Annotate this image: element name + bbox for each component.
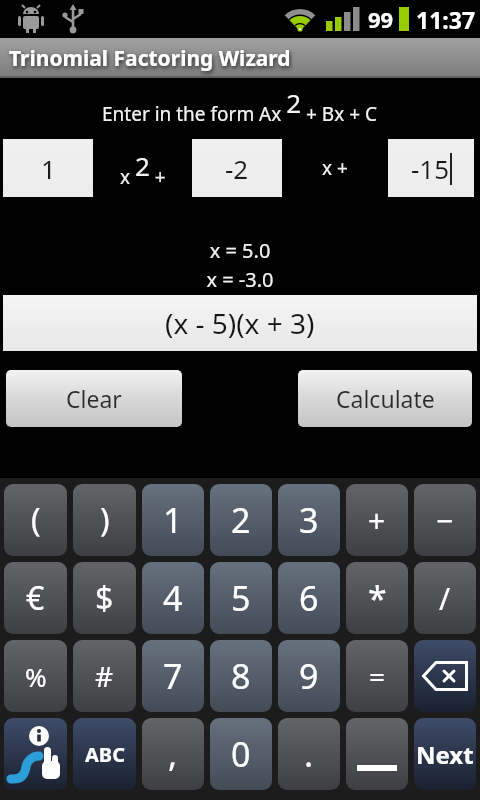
staticText: ABC (85, 741, 125, 768)
button[interactable]: -15 (388, 139, 474, 197)
button[interactable]: * (346, 562, 408, 634)
staticText: (x - 5)(x + 3) (165, 304, 315, 342)
staticText: x = -3.0 (0, 266, 480, 293)
button[interactable]: 8 (210, 640, 272, 712)
button[interactable] (414, 640, 476, 712)
button[interactable]: . (278, 718, 340, 790)
button[interactable]: Clear (6, 370, 182, 427)
button[interactable]: 4 (142, 562, 204, 634)
button[interactable]: ABC (73, 718, 136, 790)
button[interactable] (4, 718, 67, 790)
staticText: + (368, 500, 386, 541)
staticText: ) (100, 498, 110, 542)
button[interactable]: = (346, 640, 408, 712)
staticText: 5 (231, 575, 251, 621)
button[interactable]: + (346, 484, 408, 556)
staticText: 4 (163, 575, 183, 621)
button[interactable]: 0 (210, 718, 272, 790)
staticText: 2 (231, 497, 251, 543)
button[interactable]: Calculate (298, 370, 472, 427)
button[interactable]: 1 (3, 139, 93, 197)
button[interactable]: / (414, 562, 476, 634)
staticText: = (369, 657, 386, 695)
staticText: 1 (163, 497, 183, 543)
staticText: 0 (231, 731, 251, 777)
button[interactable]: € (4, 562, 67, 634)
staticText: -15 (411, 151, 450, 186)
button[interactable]: $ (73, 562, 136, 634)
button[interactable] (346, 718, 408, 790)
button[interactable]: 1 (142, 484, 204, 556)
button[interactable]: Next (414, 718, 476, 790)
button[interactable]: # (73, 640, 136, 712)
button[interactable]: (x - 5)(x + 3) (3, 295, 477, 351)
staticText: 8 (231, 653, 251, 699)
staticText: 11:37 (416, 4, 476, 35)
staticText: . (304, 731, 314, 777)
staticText: / (439, 578, 451, 619)
button[interactable]: ) (73, 484, 136, 556)
staticText: Next (416, 738, 474, 771)
button[interactable]: , (142, 718, 204, 790)
staticText: % (25, 659, 47, 694)
button[interactable]: 2 (210, 484, 272, 556)
staticText: € (26, 576, 45, 620)
staticText: 3 (299, 497, 319, 543)
staticText: Calculate (336, 383, 435, 414)
button[interactable]: 7 (142, 640, 204, 712)
button[interactable]: 3 (278, 484, 340, 556)
button[interactable]: ( (4, 484, 67, 556)
staticText: 99 (368, 4, 394, 34)
button[interactable]: − (414, 484, 476, 556)
staticText: Clear (66, 383, 122, 414)
staticText: Enter in the form Ax 2 + Bx + C (102, 85, 378, 121)
staticText: $ (95, 576, 114, 620)
button[interactable]: -2 (192, 139, 282, 197)
staticText: x 2 + (120, 148, 166, 188)
button[interactable]: 9 (278, 640, 340, 712)
staticText: 6 (299, 575, 319, 621)
button[interactable]: 5 (210, 562, 272, 634)
staticText: x = 5.0 (0, 237, 480, 264)
staticText: 1 (41, 151, 56, 186)
staticText: 7 (163, 653, 183, 699)
staticText: -2 (225, 151, 249, 186)
staticText: x + (322, 155, 348, 181)
staticText: 9 (299, 653, 319, 699)
button[interactable]: % (4, 640, 67, 712)
button[interactable]: 6 (278, 562, 340, 634)
staticText: ( (31, 498, 41, 542)
staticText: * (368, 575, 387, 621)
staticText: Trinomial Factoring Wizard (9, 44, 291, 73)
staticText: # (95, 657, 114, 695)
staticText: − (436, 500, 454, 541)
staticText: , (168, 731, 178, 777)
